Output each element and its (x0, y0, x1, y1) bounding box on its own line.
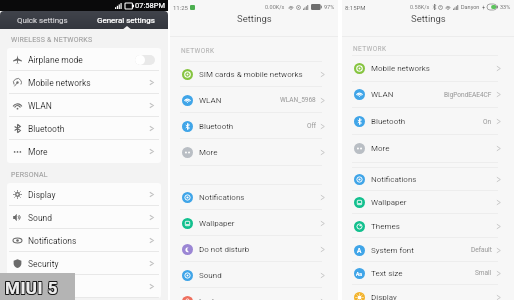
button[interactable]: More (7, 140, 161, 163)
button[interactable]: Notifications (342, 167, 514, 191)
staticText: 97% (324, 4, 335, 10)
button[interactable]: Bluetooth (7, 117, 161, 140)
button[interactable]: Sound (7, 206, 161, 229)
button[interactable]: A (342, 238, 514, 262)
staticText: More (199, 148, 218, 157)
staticText: Wallpaper (199, 219, 235, 228)
staticText: Off (307, 122, 316, 130)
staticText: Airplane mode (28, 55, 83, 65)
staticText: Themes (371, 222, 400, 231)
button[interactable] (7, 275, 161, 298)
button[interactable]: WLAN (7, 94, 161, 117)
staticText: PERSONAL (11, 171, 48, 179)
staticText: 0.58K/s (410, 4, 430, 10)
button[interactable]: Aa (342, 261, 514, 285)
button[interactable]: Bluetooth (342, 108, 514, 135)
staticText: Notifications (199, 193, 245, 202)
staticText: WLAN_5968 (280, 96, 316, 104)
button[interactable]: Wallpaper (170, 210, 338, 236)
staticText: Settings (411, 13, 446, 24)
staticText: MIUI 5 (5, 277, 59, 297)
staticText: Small (475, 269, 492, 277)
staticText: 0.00K/s (265, 4, 285, 10)
staticText: MIUI 5 (6, 277, 60, 297)
button[interactable]: Display (342, 285, 514, 300)
staticText: Security (28, 259, 59, 269)
staticText: Default (471, 246, 492, 254)
staticText: Text size (371, 269, 403, 278)
staticText: WLAN (28, 101, 52, 111)
staticText: WLAN (199, 96, 222, 105)
button[interactable]: Display (7, 183, 161, 206)
staticText: Sound (199, 271, 222, 280)
staticText: Bluetooth (371, 117, 406, 126)
button[interactable]: Sound (170, 262, 338, 288)
staticText: MIUI 5 (6, 278, 60, 298)
staticText: MIUI 5 (6, 279, 60, 299)
button[interactable]: WLAN (342, 81, 514, 108)
staticText: System font (371, 246, 414, 255)
staticText: Display (28, 190, 56, 200)
staticText: Bluetooth (199, 122, 234, 131)
staticText: SIM cards & mobile networks (199, 70, 303, 79)
button[interactable]: Airplane mode (7, 48, 161, 71)
button[interactable]: Bluetooth (170, 113, 338, 139)
button[interactable]: Mobile networks (342, 55, 514, 82)
staticText: 11:25 (173, 4, 188, 11)
button[interactable]: Notifications (7, 229, 161, 252)
staticText: WLAN (371, 90, 394, 99)
staticText: Quick settings (17, 16, 68, 25)
button[interactable]: SIM cards & mobile networks (170, 61, 338, 87)
staticText: Mobile networks (28, 78, 91, 88)
button[interactable]: Themes (342, 214, 514, 238)
button[interactable]: Lock screen (170, 288, 338, 300)
staticText: Display (371, 293, 397, 300)
staticText: MIUI 5 (4, 278, 58, 298)
staticText: BigPondEAE4CF (444, 91, 492, 99)
staticText: 8:15PM (345, 4, 366, 11)
staticText: More (371, 144, 390, 153)
staticText: Notifications (371, 175, 417, 184)
staticText: Bluetooth (28, 124, 65, 134)
staticText: NETWORK (353, 45, 387, 53)
button[interactable]: WLAN (170, 87, 338, 113)
staticText: Sound (28, 213, 53, 223)
button[interactable]: Security (7, 252, 161, 275)
button[interactable]: Quick settings (0, 11, 84, 29)
staticText: 33% (500, 4, 511, 10)
staticText: Aa (356, 271, 363, 277)
staticText: MIUI 5 (5, 278, 59, 298)
staticText: Settings (237, 13, 272, 24)
staticText: WIRELESS & NETWORKS (11, 36, 93, 44)
staticText: More (28, 147, 48, 157)
button[interactable]: Wallpaper (342, 190, 514, 214)
staticText: NETWORK (181, 47, 215, 55)
staticText: Mobile networks (371, 64, 430, 73)
staticText: Wallpaper (371, 198, 407, 207)
button[interactable]: More (342, 135, 514, 162)
staticText: MIUI 5 (4, 279, 58, 299)
button[interactable]: Mobile networks (7, 71, 161, 94)
staticText: Do not disturb (199, 245, 250, 254)
button[interactable]: General settings (84, 11, 168, 29)
button[interactable]: Do not disturb (170, 236, 338, 262)
staticText: Lock screen (199, 297, 242, 300)
staticText: General settings (97, 16, 155, 25)
staticText: Danyon (461, 4, 480, 10)
staticText: MIUI 5 (4, 277, 58, 297)
button[interactable]: More (170, 139, 338, 165)
staticText: Notifications (28, 236, 77, 246)
staticText: 07:58PM (135, 1, 165, 10)
staticText: A (357, 247, 362, 255)
staticText: On (483, 118, 492, 126)
button[interactable]: Notifications (170, 184, 338, 210)
staticText: MIUI 5 (5, 279, 59, 299)
